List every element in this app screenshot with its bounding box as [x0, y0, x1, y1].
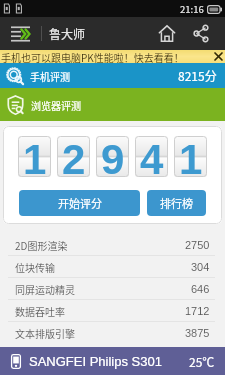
button[interactable]: 数据吞吐率 [0, 300, 225, 321]
staticText: 1712 [185, 305, 210, 317]
button[interactable]: Menu [0, 17, 41, 50]
staticText: 9 [101, 136, 125, 177]
staticText: 3875 [185, 327, 210, 339]
button[interactable]: 文本排版引擎 [0, 322, 225, 343]
button[interactable]: 浏览器评测 [0, 88, 225, 121]
staticText: 排行榜 [160, 195, 193, 211]
staticText: 鲁大师 [49, 25, 86, 42]
staticText: 2 [62, 136, 86, 177]
staticText: 4 [140, 136, 164, 177]
button[interactable]: 同屏运动精灵 [0, 278, 225, 299]
staticText: 1 [23, 136, 47, 177]
staticText: 304 [191, 261, 210, 273]
staticText: 位块传输 [15, 260, 55, 274]
staticText: 2750 [185, 239, 210, 251]
button[interactable]: Share [184, 17, 218, 50]
staticText: 21:16 [180, 2, 204, 16]
staticText: 数据吞吐率 [15, 304, 65, 318]
staticText: 646 [191, 283, 210, 295]
staticText: 2D图形渲染 [15, 238, 68, 252]
staticText: 1 [179, 136, 203, 177]
staticText: 25℃ [189, 353, 215, 370]
staticText: 手机评测 [30, 69, 70, 83]
staticText: 手机也可以跟电脑PK性能啦！快去看看！ [1, 50, 184, 63]
button[interactable]: Close banner [211, 50, 225, 63]
staticText: 文本排版引擎 [15, 326, 75, 340]
staticText: 浏览器评测 [31, 98, 81, 112]
staticText: SANGFEI Philips S301 [29, 354, 162, 369]
button[interactable]: 2D图形渲染 [0, 234, 225, 255]
button[interactable]: SANGFEI Philips S301 [0, 347, 225, 375]
button[interactable]: 开始评分 [19, 190, 140, 216]
button[interactable]: 手机也可以跟电脑PK性能啦！快去看看！ [0, 50, 225, 63]
staticText: 开始评分 [58, 195, 102, 211]
button[interactable]: Home [150, 17, 184, 50]
staticText: 同屏运动精灵 [15, 282, 75, 296]
button[interactable]: 排行榜 [147, 190, 206, 216]
button[interactable]: 位块传输 [0, 256, 225, 277]
staticText: 8215分 [178, 67, 217, 84]
button[interactable]: 手机评测 [0, 63, 225, 88]
